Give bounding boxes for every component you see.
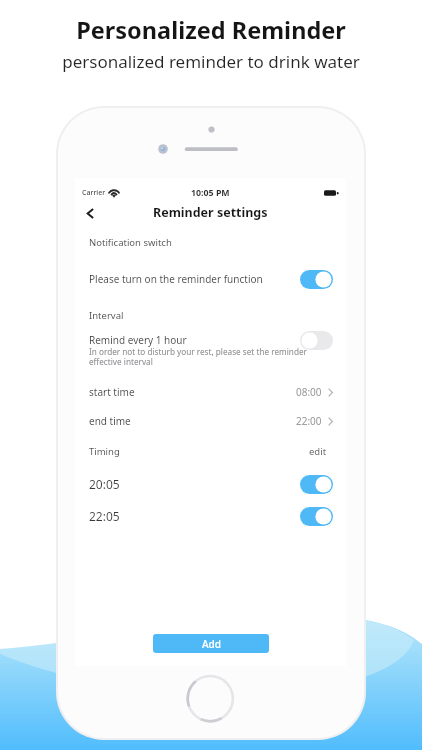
staticText: Remind every 1 hour: [89, 333, 187, 347]
staticText: 22:00: [296, 414, 322, 428]
button[interactable]: Add: [153, 634, 269, 653]
staticText: 20:05: [89, 476, 120, 492]
staticText: personalized reminder to drink water: [62, 50, 360, 73]
button[interactable]: 20:05: [75, 473, 346, 495]
staticText: 22:05: [89, 508, 120, 524]
staticText: Carrier: [82, 188, 106, 198]
button[interactable]: Please turn on the reminder function: [75, 268, 346, 290]
staticText: Interval: [89, 309, 124, 322]
staticText: 10:05 PM: [191, 187, 230, 199]
button[interactable]: Remind every 1 hour: [75, 329, 346, 351]
button[interactable]: end time: [75, 410, 346, 432]
staticText: Please turn on the reminder function: [89, 272, 263, 286]
staticText: end time: [89, 414, 131, 428]
button[interactable]: 22:05: [75, 505, 346, 527]
staticText: edit: [309, 445, 327, 458]
button[interactable]: Back: [80, 203, 100, 223]
staticText: 08:00: [296, 385, 322, 399]
staticText: Personalized Reminder: [76, 14, 346, 46]
staticText: Reminder settings: [153, 204, 268, 221]
staticText: Add: [202, 637, 221, 651]
staticText: Notification switch: [89, 236, 172, 249]
button[interactable]: start time: [75, 381, 346, 403]
button[interactable]: edit: [305, 441, 331, 462]
staticText: Timing: [89, 445, 120, 458]
staticText: start time: [89, 385, 135, 399]
staticText: In order not to disturb your rest, pleas…: [89, 346, 307, 367]
